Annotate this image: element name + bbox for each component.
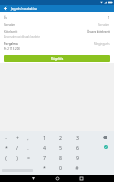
button[interactable]: 7 [39, 152, 49, 162]
button[interactable]: Rögzítés [4, 55, 110, 62]
staticText: 8 [59, 154, 62, 161]
staticText: - [5, 134, 7, 141]
button[interactable]: Sorszám [0, 22, 114, 28]
button[interactable]: Év [0, 15, 114, 21]
staticText: * [43, 164, 46, 171]
button[interactable]: Enter [102, 143, 110, 151]
staticText: ( [5, 154, 7, 161]
button[interactable]: 0 [55, 162, 65, 172]
staticText: Jegyzés hozzáadása [11, 7, 37, 11]
staticText: Forgalma [4, 42, 18, 46]
button[interactable]: Home [52, 175, 63, 182]
button[interactable]: 9 [72, 152, 82, 162]
staticText: 7 [43, 154, 46, 161]
staticText: * [5, 144, 8, 151]
staticText: , [27, 134, 29, 141]
staticText: . [27, 144, 29, 151]
button[interactable]: / [12, 142, 22, 152]
staticText: Ft 2 113 200 [4, 47, 20, 51]
button[interactable]: Back [28, 175, 39, 182]
button[interactable]: 6 [72, 142, 82, 152]
staticText: Összes kötelezett [87, 30, 110, 34]
button[interactable]: + [12, 132, 22, 142]
staticText: 3 [76, 134, 79, 141]
staticText: Sorszám [98, 23, 110, 27]
staticText: Rögzítés [51, 57, 64, 61]
staticText: Év [4, 16, 7, 20]
staticText: 0 [59, 164, 62, 171]
button[interactable]: Recent apps [76, 175, 87, 182]
button[interactable]: 8 [55, 152, 65, 162]
staticText: 9 [76, 154, 79, 161]
button[interactable]: Back [0, 5, 10, 12]
staticText: + [16, 134, 19, 141]
button[interactable]: 2 [55, 132, 65, 142]
staticText: / [16, 144, 18, 151]
button[interactable]: * [39, 162, 49, 172]
staticText: 4 [43, 144, 46, 151]
button[interactable]: . [23, 142, 33, 152]
button[interactable]: ) [12, 152, 22, 162]
staticText: 2 [59, 134, 62, 141]
staticText: 6 [76, 144, 79, 151]
staticText: 1 [43, 134, 46, 141]
button[interactable]: 3 [72, 132, 82, 142]
staticText: 5 [59, 144, 62, 151]
button[interactable]: , [23, 132, 33, 142]
button[interactable]: = [23, 152, 33, 162]
button[interactable]: 4 [39, 142, 49, 152]
button[interactable]: * [1, 142, 11, 152]
staticText: Kötelezett [4, 30, 18, 34]
staticText: Megjegyzés [94, 42, 110, 46]
button[interactable]: Backspace [100, 132, 110, 142]
button[interactable]: Forgalma [4, 41, 110, 47]
staticText: = [27, 154, 30, 161]
button[interactable]: 1 [39, 132, 49, 142]
button[interactable]: ( [1, 152, 11, 162]
button[interactable]: - [1, 132, 11, 142]
button[interactable]: # [72, 162, 82, 172]
staticText: # [75, 164, 79, 171]
staticText: ) [16, 154, 18, 161]
button[interactable]: Kötelezett [0, 29, 114, 35]
staticText: Sorszám [4, 23, 16, 27]
button[interactable]: 5 [55, 142, 65, 152]
staticText: A sorszám az időszak kezdete [4, 35, 40, 39]
staticText: 1 [108, 16, 110, 20]
